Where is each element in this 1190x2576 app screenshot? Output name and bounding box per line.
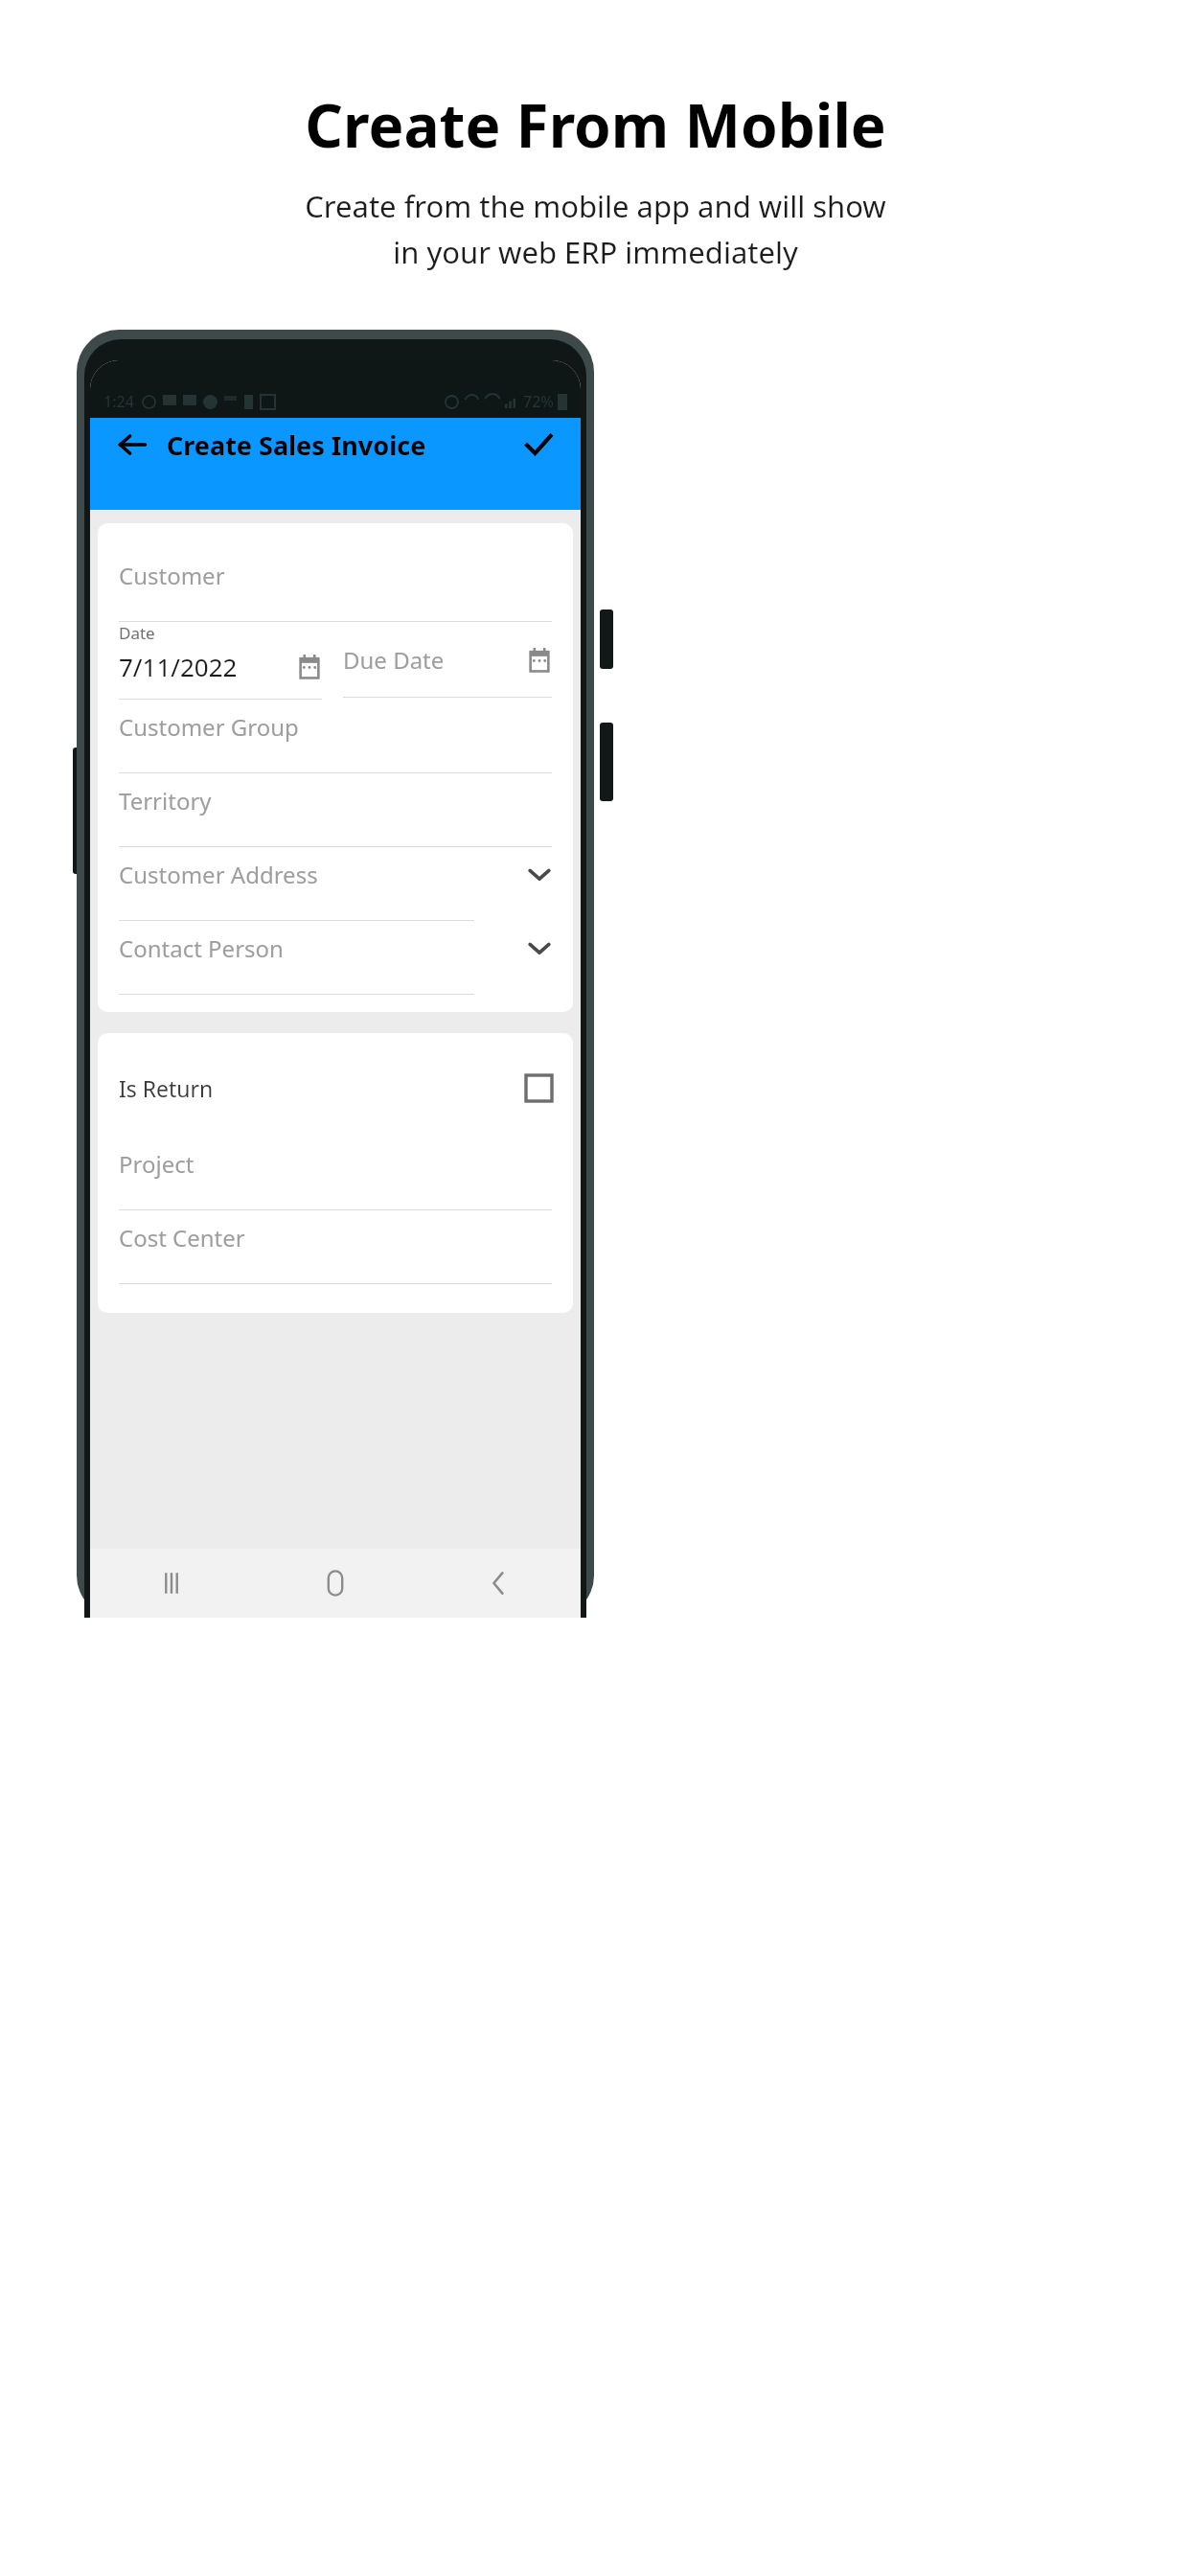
staticText: Create From Mobile: [305, 84, 886, 165]
button[interactable]: Home: [253, 1549, 417, 1618]
staticText: Customer Address: [119, 859, 318, 890]
button[interactable]: Project: [119, 1137, 552, 1210]
button[interactable]: Recents: [90, 1549, 253, 1618]
staticText: Cost Center: [119, 1222, 245, 1253]
staticText: Date: [119, 622, 155, 644]
staticText: Is Return: [119, 1073, 214, 1103]
button[interactable]: Save: [512, 418, 565, 471]
staticText: Create from the mobile app and will show…: [305, 186, 886, 272]
button[interactable]: Due Date: [343, 622, 552, 698]
staticText: 72%: [523, 391, 554, 412]
staticText: Due Date: [343, 644, 445, 676]
button[interactable]: Contact Person: [119, 921, 552, 995]
button[interactable]: Back: [105, 418, 159, 471]
button[interactable]: Date: [119, 622, 322, 700]
staticText: Project: [119, 1148, 195, 1180]
button[interactable]: Customer: [119, 548, 552, 622]
button[interactable]: Cost Center: [119, 1210, 552, 1284]
staticText: 1:24: [103, 391, 134, 412]
button[interactable]: Customer Group: [119, 700, 552, 773]
button[interactable]: Back: [417, 1549, 581, 1618]
staticText: Customer: [119, 560, 225, 591]
staticText: Create Sales Invoice: [167, 427, 426, 463]
staticText: 7/11/2022: [119, 650, 238, 683]
button[interactable]: Is Return: [119, 1062, 552, 1114]
staticText: Customer Group: [119, 711, 299, 743]
button[interactable]: Customer Address: [119, 847, 552, 921]
button[interactable]: Territory: [119, 773, 552, 847]
staticText: Contact Person: [119, 932, 284, 964]
staticText: Territory: [119, 785, 212, 816]
